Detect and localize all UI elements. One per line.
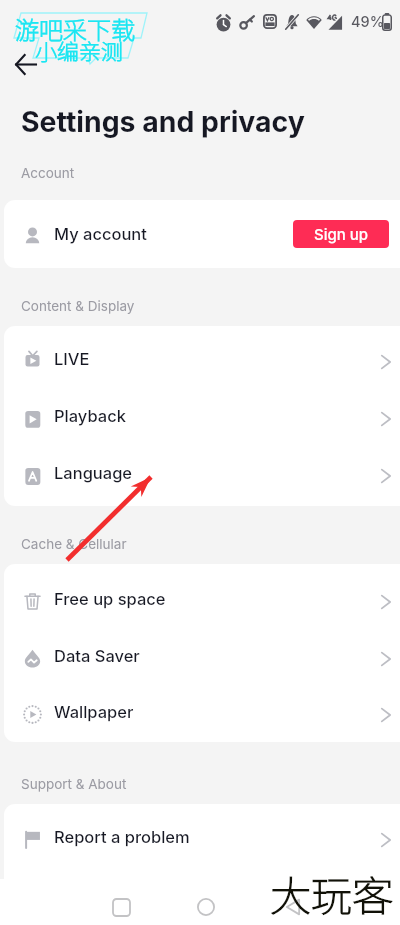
button[interactable]: Back: [3, 42, 47, 86]
button[interactable]: Back: [270, 884, 316, 925]
staticText: LIVE: [54, 349, 90, 369]
staticText: Sign up: [314, 225, 369, 243]
staticText: Data Saver: [54, 646, 140, 666]
button[interactable]: Data Saver: [0, 627, 400, 684]
staticText: Cache & Cellular: [21, 536, 127, 552]
staticText: Wallpaper: [54, 702, 134, 722]
button[interactable]: Report a problem: [0, 808, 400, 865]
staticText: Free up space: [54, 589, 166, 609]
button[interactable]: LIVE: [0, 330, 400, 387]
staticText: Playback: [54, 406, 126, 426]
staticText: 游吧采下载: [15, 11, 135, 46]
staticText: Support & About: [21, 776, 127, 792]
button[interactable]: Playback: [0, 387, 400, 444]
button[interactable]: My account: [0, 205, 400, 262]
staticText: Report a problem: [54, 827, 190, 847]
staticText: Content & Display: [21, 298, 135, 314]
staticText: Account: [21, 165, 75, 181]
staticText: My account: [54, 224, 147, 244]
staticText: 大玩客: [270, 863, 393, 922]
button[interactable]: Free up space: [0, 570, 400, 627]
staticText: 小编亲测: [35, 34, 124, 66]
button[interactable]: Sign up: [293, 220, 389, 248]
staticText: 49%: [351, 13, 385, 31]
button[interactable]: Home: [183, 884, 229, 925]
button[interactable]: Recents: [98, 884, 144, 925]
button[interactable]: Language: [0, 444, 400, 501]
staticText: Settings and privacy: [21, 104, 305, 138]
button[interactable]: Wallpaper: [0, 683, 400, 740]
staticText: Language: [54, 463, 133, 483]
